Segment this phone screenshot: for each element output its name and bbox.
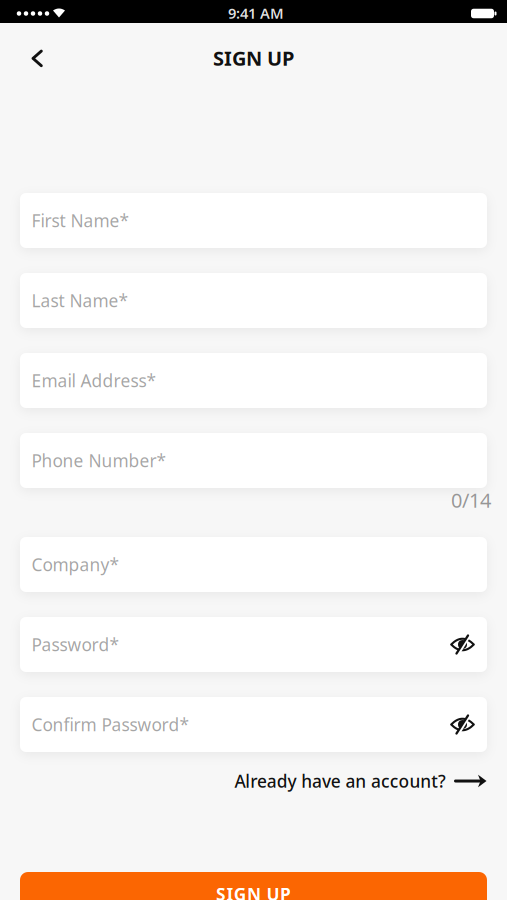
staticText: Confirm Password* (31, 713, 189, 736)
staticText: Company* (31, 553, 119, 576)
staticText: First Name* (31, 209, 129, 232)
staticText: 0/14 (451, 487, 491, 513)
button[interactable]: Last Name* (20, 273, 487, 328)
button[interactable]: Company* (20, 537, 487, 592)
button[interactable]: First Name* (20, 193, 487, 248)
staticText: SIGN UP (213, 45, 294, 71)
button[interactable]: Password* (20, 617, 487, 672)
button[interactable]: Show password (450, 635, 475, 653)
staticText: Last Name* (31, 289, 128, 312)
staticText: Already have an account? (234, 769, 446, 792)
button[interactable]: Confirm Password* (20, 697, 487, 752)
button[interactable]: Email Address* (20, 353, 487, 408)
button[interactable]: Already have an account? (20, 769, 487, 792)
staticText: Email Address* (31, 369, 156, 392)
staticText: Password* (31, 633, 119, 656)
staticText: Phone Number* (31, 449, 166, 472)
button[interactable]: Show password (450, 715, 475, 733)
button[interactable]: Phone Number* (20, 433, 487, 488)
button[interactable]: Back (15, 36, 59, 80)
staticText: SIGN UP (216, 882, 291, 900)
staticText: 9:41 AM (228, 3, 284, 23)
button[interactable]: SIGN UP (20, 872, 487, 900)
